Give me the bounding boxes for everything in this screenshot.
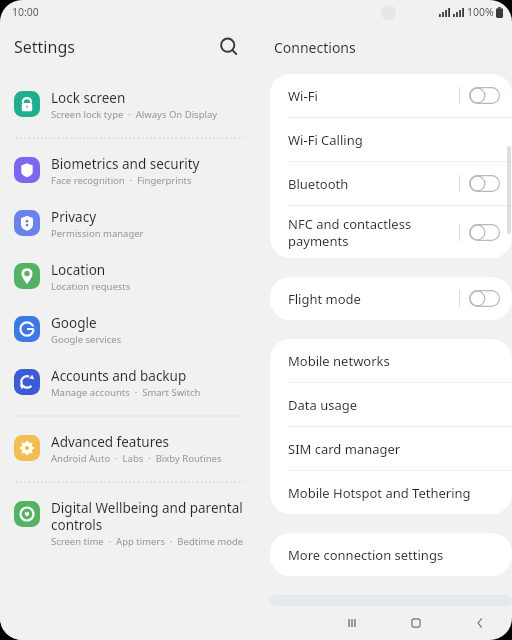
staticText: SIM card manager: [288, 440, 500, 458]
staticText: Wi-Fi: [288, 87, 459, 105]
staticText: Wi-Fi Calling: [288, 131, 500, 149]
staticText: Settings: [14, 36, 75, 58]
staticText: Connections: [274, 38, 356, 57]
button[interactable]: Google: [0, 305, 256, 355]
staticText: NFC and contactless payments: [288, 215, 459, 250]
button[interactable]: Advanced features: [0, 424, 256, 474]
button[interactable]: Mobile Hotspot and Tethering: [270, 471, 512, 514]
staticText: Screen time · App timers · Bedtime mode: [51, 535, 244, 548]
staticText: Manage accounts · Smart Switch: [51, 386, 201, 399]
button[interactable]: Toggle: [469, 87, 500, 104]
button[interactable]: Digital Wellbeing and parental controls: [0, 490, 256, 557]
button[interactable]: Home: [384, 606, 448, 640]
staticText: Mobile networks: [288, 352, 500, 370]
staticText: Flight mode: [288, 290, 459, 308]
staticText: Accounts and backup: [51, 367, 187, 385]
staticText: Data usage: [288, 396, 500, 414]
staticText: Advanced features: [51, 433, 170, 451]
button[interactable]: SIM card manager: [270, 427, 512, 470]
button[interactable]: Back: [448, 606, 512, 640]
staticText: Mobile Hotspot and Tethering: [288, 484, 500, 502]
button[interactable]: Toggle: [469, 290, 500, 307]
staticText: Privacy: [51, 208, 97, 226]
staticText: Location requests: [51, 280, 131, 293]
button[interactable]: Location: [0, 252, 256, 302]
button[interactable]: Toggle: [469, 224, 500, 241]
button[interactable]: Wi-Fi Calling: [270, 118, 512, 161]
staticText: Android Auto · Labs · Bixby Routines: [51, 452, 222, 465]
staticText: 10:00: [12, 5, 39, 19]
staticText: More connection settings: [288, 546, 500, 564]
staticText: Bluetooth: [288, 175, 459, 193]
button[interactable]: Search: [216, 34, 242, 60]
button[interactable]: Bluetooth: [270, 162, 512, 205]
button[interactable]: Toggle: [469, 175, 500, 192]
button[interactable]: More connection settings: [270, 533, 512, 576]
button[interactable]: Data usage: [270, 383, 512, 426]
button[interactable]: Accounts and backup: [0, 358, 256, 408]
button[interactable]: Privacy: [0, 199, 256, 249]
staticText: Permission manager: [51, 227, 144, 240]
staticText: Face recognition · Fingerprints: [51, 174, 192, 187]
button[interactable]: NFC and contactless payments: [270, 206, 512, 258]
button[interactable]: Mobile networks: [270, 339, 512, 382]
staticText: Location: [51, 261, 106, 279]
button[interactable]: Flight mode: [270, 277, 512, 320]
button[interactable]: Lock screen: [0, 80, 256, 130]
button[interactable]: Wi-Fi: [270, 74, 512, 117]
staticText: 100%: [467, 5, 494, 19]
staticText: Lock screen: [51, 89, 126, 107]
staticText: Google: [51, 314, 97, 332]
staticText: Screen lock type · Always On Display: [51, 108, 218, 121]
button[interactable]: Recent apps: [320, 606, 384, 640]
button[interactable]: Biometrics and security: [0, 146, 256, 196]
staticText: Google services: [51, 333, 122, 346]
staticText: Biometrics and security: [51, 155, 200, 173]
staticText: Digital Wellbeing and parental controls: [51, 499, 243, 534]
